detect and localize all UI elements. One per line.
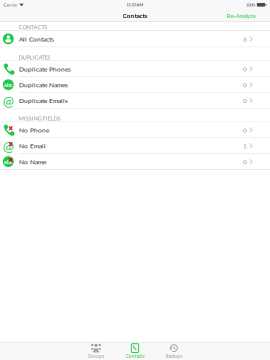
- staticText: 0: [243, 81, 247, 89]
- staticText: 6: [243, 35, 247, 43]
- staticText: All Contacts: [19, 35, 54, 43]
- staticText: Duplicate Names: [19, 81, 68, 89]
- staticText: Backups: [165, 353, 182, 359]
- staticText: abc: [4, 81, 13, 88]
- staticText: MISSING FIELDS: [18, 115, 60, 122]
- button[interactable]: Backups: [154, 343, 193, 360]
- button[interactable]: @: [0, 93, 270, 108]
- button[interactable]: All Contacts: [0, 31, 270, 47]
- button[interactable]: Duplicate Phones: [0, 61, 270, 76]
- staticText: CONTACTS: [18, 24, 47, 30]
- staticText: @: [3, 138, 14, 154]
- button[interactable]: No Phone: [0, 122, 270, 138]
- staticText: 100%: [246, 2, 255, 7]
- button[interactable]: Re-Analyze: [225, 12, 256, 19]
- staticText: Groups: [88, 353, 104, 359]
- staticText: 1: [243, 142, 247, 150]
- staticText: Contacts: [125, 353, 144, 359]
- staticText: No Email: [19, 142, 46, 150]
- staticText: Carrier: [3, 2, 17, 7]
- staticText: 11:23 AM: [126, 2, 143, 7]
- staticText: Duplicate Emails: [19, 97, 68, 104]
- staticText: Duplicate Phones: [19, 65, 71, 73]
- button[interactable]: abc: [0, 77, 270, 92]
- button[interactable]: abc: [0, 154, 270, 169]
- staticText: abc: [4, 158, 13, 165]
- staticText: 0: [243, 158, 247, 165]
- staticText: 0: [243, 65, 247, 73]
- staticText: 0: [243, 126, 247, 134]
- button[interactable]: @: [0, 138, 270, 153]
- staticText: @: [3, 92, 14, 108]
- button[interactable]: Contacts: [115, 343, 154, 360]
- staticText: No Phone: [19, 126, 49, 134]
- button[interactable]: Groups: [76, 343, 115, 360]
- staticText: Contacts: [122, 12, 147, 19]
- staticText: Re-Analyze: [226, 12, 255, 19]
- staticText: No Name: [19, 158, 46, 165]
- staticText: 0: [243, 97, 247, 104]
- staticText: DUPLICATES: [18, 54, 50, 61]
